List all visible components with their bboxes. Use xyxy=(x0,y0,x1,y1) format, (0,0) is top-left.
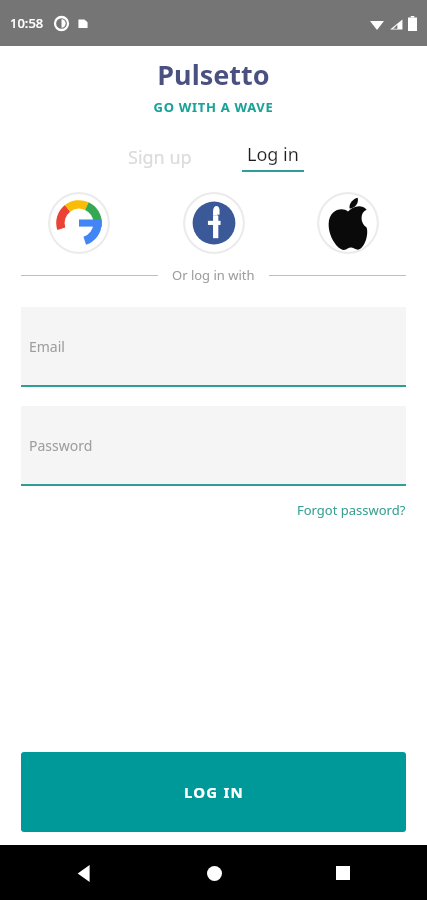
staticText: 10:58 xyxy=(10,14,44,32)
button[interactable]: Back xyxy=(62,851,106,895)
staticText: Email xyxy=(29,337,65,356)
staticText: LOG IN xyxy=(184,782,244,802)
button[interactable]: Sign in with Apple xyxy=(317,192,379,254)
staticText: GO WITH A WAVE xyxy=(0,98,427,116)
staticText: Password xyxy=(29,436,93,455)
staticText: Pulsetto xyxy=(0,56,427,93)
button[interactable]: Password xyxy=(21,406,406,486)
button[interactable]: LOG IN xyxy=(21,752,406,832)
staticText: Sign up xyxy=(128,145,192,170)
button[interactable]: Home xyxy=(192,851,236,895)
button[interactable]: Email xyxy=(21,307,406,387)
button[interactable]: Sign in with Google xyxy=(48,192,110,254)
staticText: Or log in with xyxy=(172,266,255,284)
staticText: Forgot password? xyxy=(297,501,406,519)
button[interactable]: Recent apps xyxy=(321,851,365,895)
button[interactable]: Forgot password? xyxy=(297,499,406,521)
button[interactable]: Sign up xyxy=(118,141,202,174)
button[interactable]: Log in xyxy=(236,138,310,176)
staticText: Log in xyxy=(247,142,299,167)
button[interactable]: Sign in with Facebook xyxy=(183,192,245,254)
